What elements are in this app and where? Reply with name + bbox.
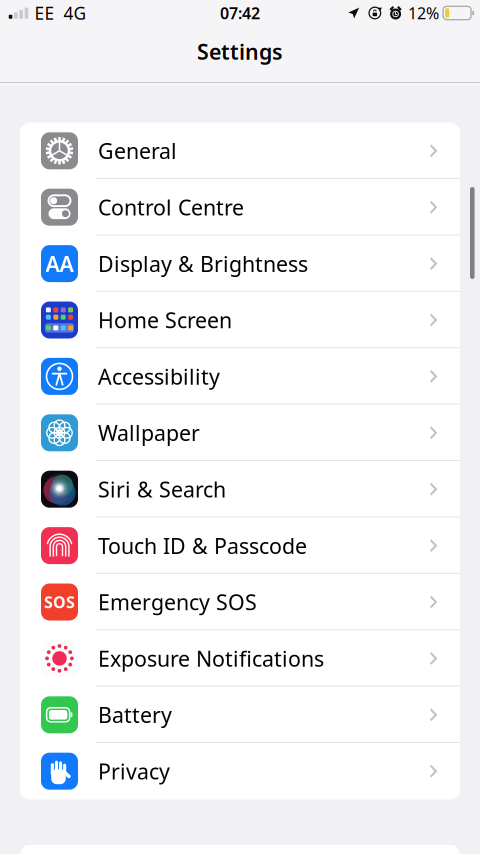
button[interactable]: Home Screen [20, 292, 460, 348]
button[interactable]: Touch ID & Passcode [20, 517, 460, 574]
staticText: 07:42 [220, 2, 260, 24]
button[interactable]: Wallpaper [20, 405, 460, 461]
staticText: Emergency SOS [98, 588, 257, 616]
button[interactable]: General [20, 123, 460, 179]
staticText: Home Screen [98, 306, 232, 334]
button[interactable]: Siri & Search [20, 461, 460, 517]
staticText: Accessibility [98, 362, 220, 390]
staticText: EE [34, 1, 54, 24]
button[interactable]: Privacy [20, 743, 460, 799]
button[interactable]: Control Centre [20, 179, 460, 235]
staticText: Settings [197, 37, 283, 66]
staticText: Siri & Search [98, 475, 226, 503]
button[interactable]: AA [20, 235, 460, 292]
staticText: General [98, 137, 177, 165]
staticText: AA [45, 249, 73, 278]
button[interactable]: Accessibility [20, 348, 460, 405]
staticText: Touch ID & Passcode [98, 531, 307, 560]
staticText: SOS [44, 591, 75, 613]
staticText: Battery [98, 701, 172, 729]
staticText: Wallpaper [98, 419, 200, 447]
staticText: Control Centre [98, 193, 244, 221]
staticText: Display & Brightness [98, 249, 308, 278]
button[interactable]: SOS [20, 574, 460, 630]
staticText: Privacy [98, 757, 170, 785]
staticText: 4G [63, 1, 86, 24]
staticText: Exposure Notifications [98, 644, 324, 672]
button[interactable]: Battery [20, 687, 460, 743]
staticText: 12% [408, 2, 439, 24]
button[interactable]: Exposure Notifications [20, 630, 460, 687]
